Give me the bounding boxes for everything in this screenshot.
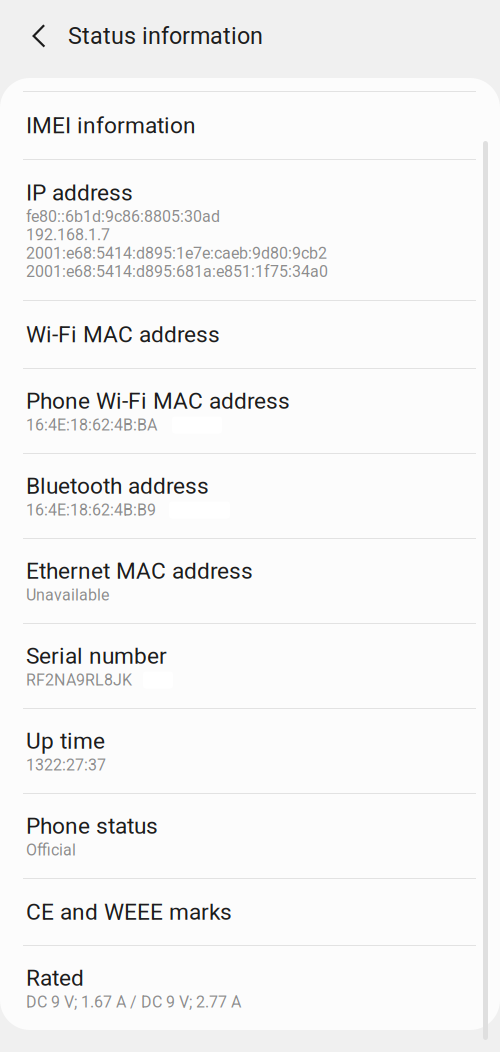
button[interactable]: Serial number: [0, 624, 500, 708]
staticText: 16:4E:18:62:4B:BA: [26, 416, 157, 434]
staticText: Wi-Fi MAC address: [26, 321, 220, 348]
button[interactable]: IMEI information: [0, 92, 500, 159]
button[interactable]: Bluetooth address: [0, 454, 500, 538]
staticText: Up time: [26, 728, 105, 754]
button[interactable]: Up time: [0, 709, 500, 793]
staticText: 16:4E:18:62:4B:B9: [26, 501, 156, 519]
staticText: Ethernet MAC address: [26, 558, 253, 584]
staticText: 1322:27:37: [26, 756, 106, 774]
staticText: DC 9 V; 1.67 A / DC 9 V; 2.77 A: [26, 993, 241, 1011]
staticText: Phone status: [26, 813, 158, 839]
staticText: IMEI information: [26, 112, 196, 139]
staticText: fe80::6b1d:9c86:8805:30ad: [26, 207, 220, 226]
staticText: CE and WEEE marks: [26, 899, 232, 925]
staticText: RF2NA9RL8JK: [26, 671, 132, 689]
staticText: Phone Wi-Fi MAC address: [26, 388, 290, 414]
button[interactable]: Back: [17, 17, 61, 61]
staticText: Serial number: [26, 643, 167, 669]
button[interactable]: Phone status: [0, 794, 500, 878]
button[interactable]: Ethernet MAC address: [0, 539, 500, 623]
button[interactable]: CE and WEEE marks: [0, 879, 500, 945]
staticText: Status information: [68, 22, 263, 50]
staticText: Unavailable: [26, 586, 109, 604]
button[interactable]: Rated: [0, 946, 500, 1030]
staticText: 2001:e68:5414:d895:681a:e851:1f75:34a0: [26, 262, 328, 281]
staticText: Official: [26, 841, 76, 859]
staticText: 2001:e68:5414:d895:1e7e:caeb:9d80:9cb2: [26, 244, 327, 263]
staticText: Bluetooth address: [26, 473, 209, 499]
staticText: Rated: [26, 965, 84, 991]
staticText: IP address: [26, 179, 133, 206]
button[interactable]: IP address: [0, 160, 500, 300]
staticText: 192.168.1.7: [26, 225, 110, 244]
button[interactable]: Wi-Fi MAC address: [0, 301, 500, 368]
button[interactable]: Phone Wi-Fi MAC address: [0, 369, 500, 453]
